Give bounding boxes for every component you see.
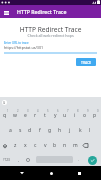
staticText: v	[44, 142, 47, 149]
staticText: m	[73, 142, 78, 149]
button[interactable]: Shift	[0, 138, 10, 153]
staticText: https://httpstat.us/301	[4, 45, 44, 50]
button[interactable]: Voice search	[2, 100, 7, 105]
button[interactable]: n	[60, 138, 70, 153]
staticText: n	[63, 142, 67, 149]
staticText: 3	[27, 109, 29, 113]
staticText: Check all web redirect hops	[0, 33, 101, 38]
button[interactable]: z	[10, 138, 20, 153]
staticText: .	[78, 157, 80, 162]
staticText: x	[24, 142, 27, 149]
staticText: u	[63, 112, 67, 119]
staticText: y	[54, 112, 57, 119]
staticText: g	[48, 127, 52, 134]
button[interactable]: TRACE	[76, 58, 96, 66]
button[interactable]: Navigation menu	[0, 5, 13, 18]
button[interactable]: ?123	[0, 153, 13, 166]
staticText: s	[19, 127, 22, 134]
staticText: G	[3, 101, 6, 105]
staticText: c	[34, 142, 37, 149]
button[interactable]: c	[30, 138, 40, 153]
staticText: 4	[37, 109, 39, 113]
button[interactable]: m	[70, 138, 80, 153]
staticText: d	[28, 127, 32, 134]
staticText: z	[14, 142, 17, 149]
staticText: Enter URL to trace	[4, 41, 29, 45]
staticText: i	[74, 112, 76, 119]
button[interactable]: a	[5, 123, 15, 138]
staticText: ,	[18, 157, 20, 162]
staticText: TRACE	[81, 60, 92, 65]
button[interactable]: r	[30, 108, 40, 123]
staticText: f	[39, 127, 41, 134]
button[interactable]: p	[90, 108, 100, 123]
staticText: b	[53, 142, 57, 149]
staticText: o	[83, 112, 87, 119]
staticText: e	[24, 112, 27, 119]
staticText: 2	[17, 109, 19, 113]
button[interactable]: h	[55, 123, 65, 138]
staticText: 8	[77, 109, 79, 113]
button[interactable]: u	[60, 108, 70, 123]
staticText: h	[58, 127, 62, 134]
button[interactable]: Home	[44, 166, 58, 180]
button[interactable]: ,	[14, 153, 23, 166]
button[interactable]: w	[10, 108, 20, 123]
staticText: k	[79, 127, 82, 134]
button[interactable]: t	[40, 108, 50, 123]
staticText: 1	[7, 109, 9, 113]
button[interactable]: f	[35, 123, 45, 138]
button[interactable]: d	[25, 123, 35, 138]
staticText: 0	[97, 109, 99, 113]
staticText: t	[44, 112, 46, 119]
staticText: p	[93, 112, 97, 119]
staticText: 9	[87, 109, 89, 113]
button[interactable]: j	[65, 123, 75, 138]
staticText: 5	[47, 109, 49, 113]
staticText: q	[3, 112, 7, 119]
staticText: j	[69, 127, 71, 134]
staticText: r	[34, 112, 37, 119]
staticText: HTTP Redirect Trace	[0, 25, 101, 34]
staticText: HTTP Redirect Trace	[17, 8, 67, 15]
button[interactable]: x	[20, 138, 30, 153]
staticText: w	[13, 112, 17, 119]
staticText: ?123	[3, 158, 10, 162]
staticText: 6	[57, 109, 59, 113]
button[interactable]: g	[45, 123, 55, 138]
button[interactable]: q	[0, 108, 10, 123]
button[interactable]: o	[80, 108, 90, 123]
button[interactable]: e	[20, 108, 30, 123]
staticText: a	[9, 127, 12, 134]
button[interactable]: v	[40, 138, 50, 153]
button[interactable]: Recent apps	[72, 166, 86, 180]
button[interactable]: Back	[15, 166, 29, 180]
button[interactable]: k	[75, 123, 85, 138]
button[interactable]: s	[15, 123, 25, 138]
button[interactable]: l	[85, 123, 95, 138]
button[interactable]: Enter	[88, 156, 97, 165]
staticText: l	[89, 127, 91, 134]
button[interactable]: y	[50, 108, 60, 123]
button[interactable]: Emoji	[23, 153, 32, 166]
staticText: 7	[67, 109, 69, 113]
button[interactable]: Backspace	[80, 138, 90, 153]
button[interactable]: i	[70, 108, 80, 123]
button[interactable]: b	[50, 138, 60, 153]
